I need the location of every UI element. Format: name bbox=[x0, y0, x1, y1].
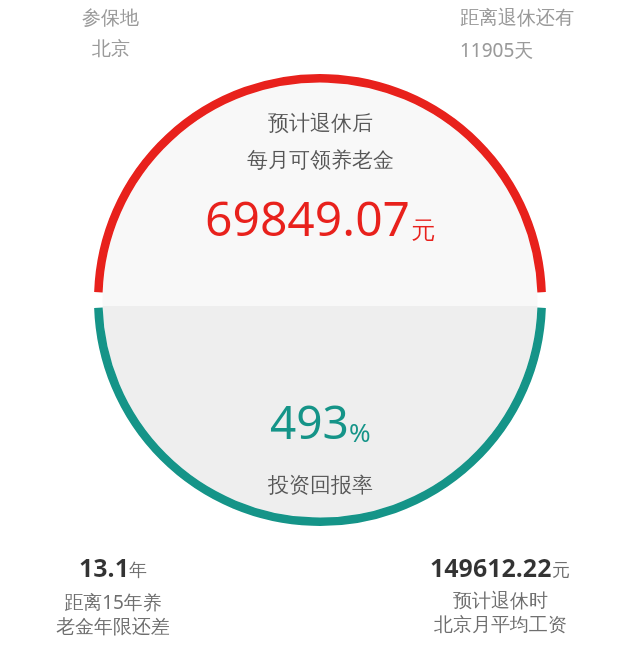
button[interactable]: 149612.22 bbox=[430, 550, 570, 637]
staticText: 参保地 bbox=[82, 6, 139, 30]
staticText: 距离15年养 bbox=[64, 589, 162, 615]
staticText: 年 bbox=[129, 559, 147, 582]
staticText: 149612.22 bbox=[430, 550, 552, 584]
staticText: 预计退休时 bbox=[453, 589, 548, 613]
staticText: 13.1 bbox=[79, 550, 129, 584]
staticText: 北京月平均工资 bbox=[434, 613, 567, 637]
staticText: 元 bbox=[411, 215, 435, 245]
staticText: 11905天 bbox=[460, 37, 534, 63]
button[interactable]: 13.1 bbox=[56, 550, 170, 639]
staticText: 投资回报率 bbox=[268, 472, 373, 498]
staticText: 每月可领养老金 bbox=[247, 147, 394, 173]
staticText: 北京 bbox=[92, 37, 130, 61]
staticText: % bbox=[349, 414, 371, 449]
button[interactable]: Pension projection chart bbox=[94, 74, 546, 526]
button[interactable]: 距离退休还有 bbox=[460, 6, 574, 63]
staticText: 预计退休后 bbox=[268, 110, 373, 136]
staticText: 元 bbox=[552, 559, 570, 582]
staticText: 69849.07 bbox=[205, 185, 411, 250]
staticText: 距离退休还有 bbox=[460, 6, 574, 30]
staticText: 493 bbox=[270, 390, 349, 453]
staticText: 老金年限还差 bbox=[56, 615, 170, 639]
button[interactable]: 参保地 bbox=[82, 6, 139, 61]
